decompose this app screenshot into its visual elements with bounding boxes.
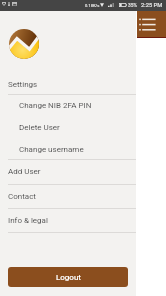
- button[interactable]: Change username: [0, 138, 136, 160]
- staticText: 35%: [128, 3, 137, 9]
- button[interactable]: Info & legal: [0, 208, 136, 232]
- staticText: Contact: [8, 192, 36, 201]
- staticText: Add User: [8, 167, 41, 176]
- button[interactable]: Delete User: [0, 116, 136, 138]
- button[interactable]: Change NIB 2FA PIN: [0, 94, 136, 116]
- staticText: Logout: [56, 273, 81, 282]
- button[interactable]: Add User: [0, 159, 136, 183]
- staticText: 2:25 PM: [141, 2, 163, 9]
- staticText: Delete User: [19, 123, 60, 132]
- staticText: Change NIB 2FA PIN: [19, 101, 92, 110]
- button[interactable]: Contact: [0, 184, 136, 209]
- staticText: Settings: [8, 80, 38, 89]
- staticText: 0.18K/s: [85, 3, 100, 8]
- staticText: Info & legal: [8, 216, 48, 225]
- button[interactable]: Logout: [8, 267, 128, 287]
- button[interactable]: Open navigation menu: [137, 11, 166, 37]
- button[interactable]: Settings: [0, 74, 136, 94]
- staticText: Change username: [19, 145, 84, 154]
